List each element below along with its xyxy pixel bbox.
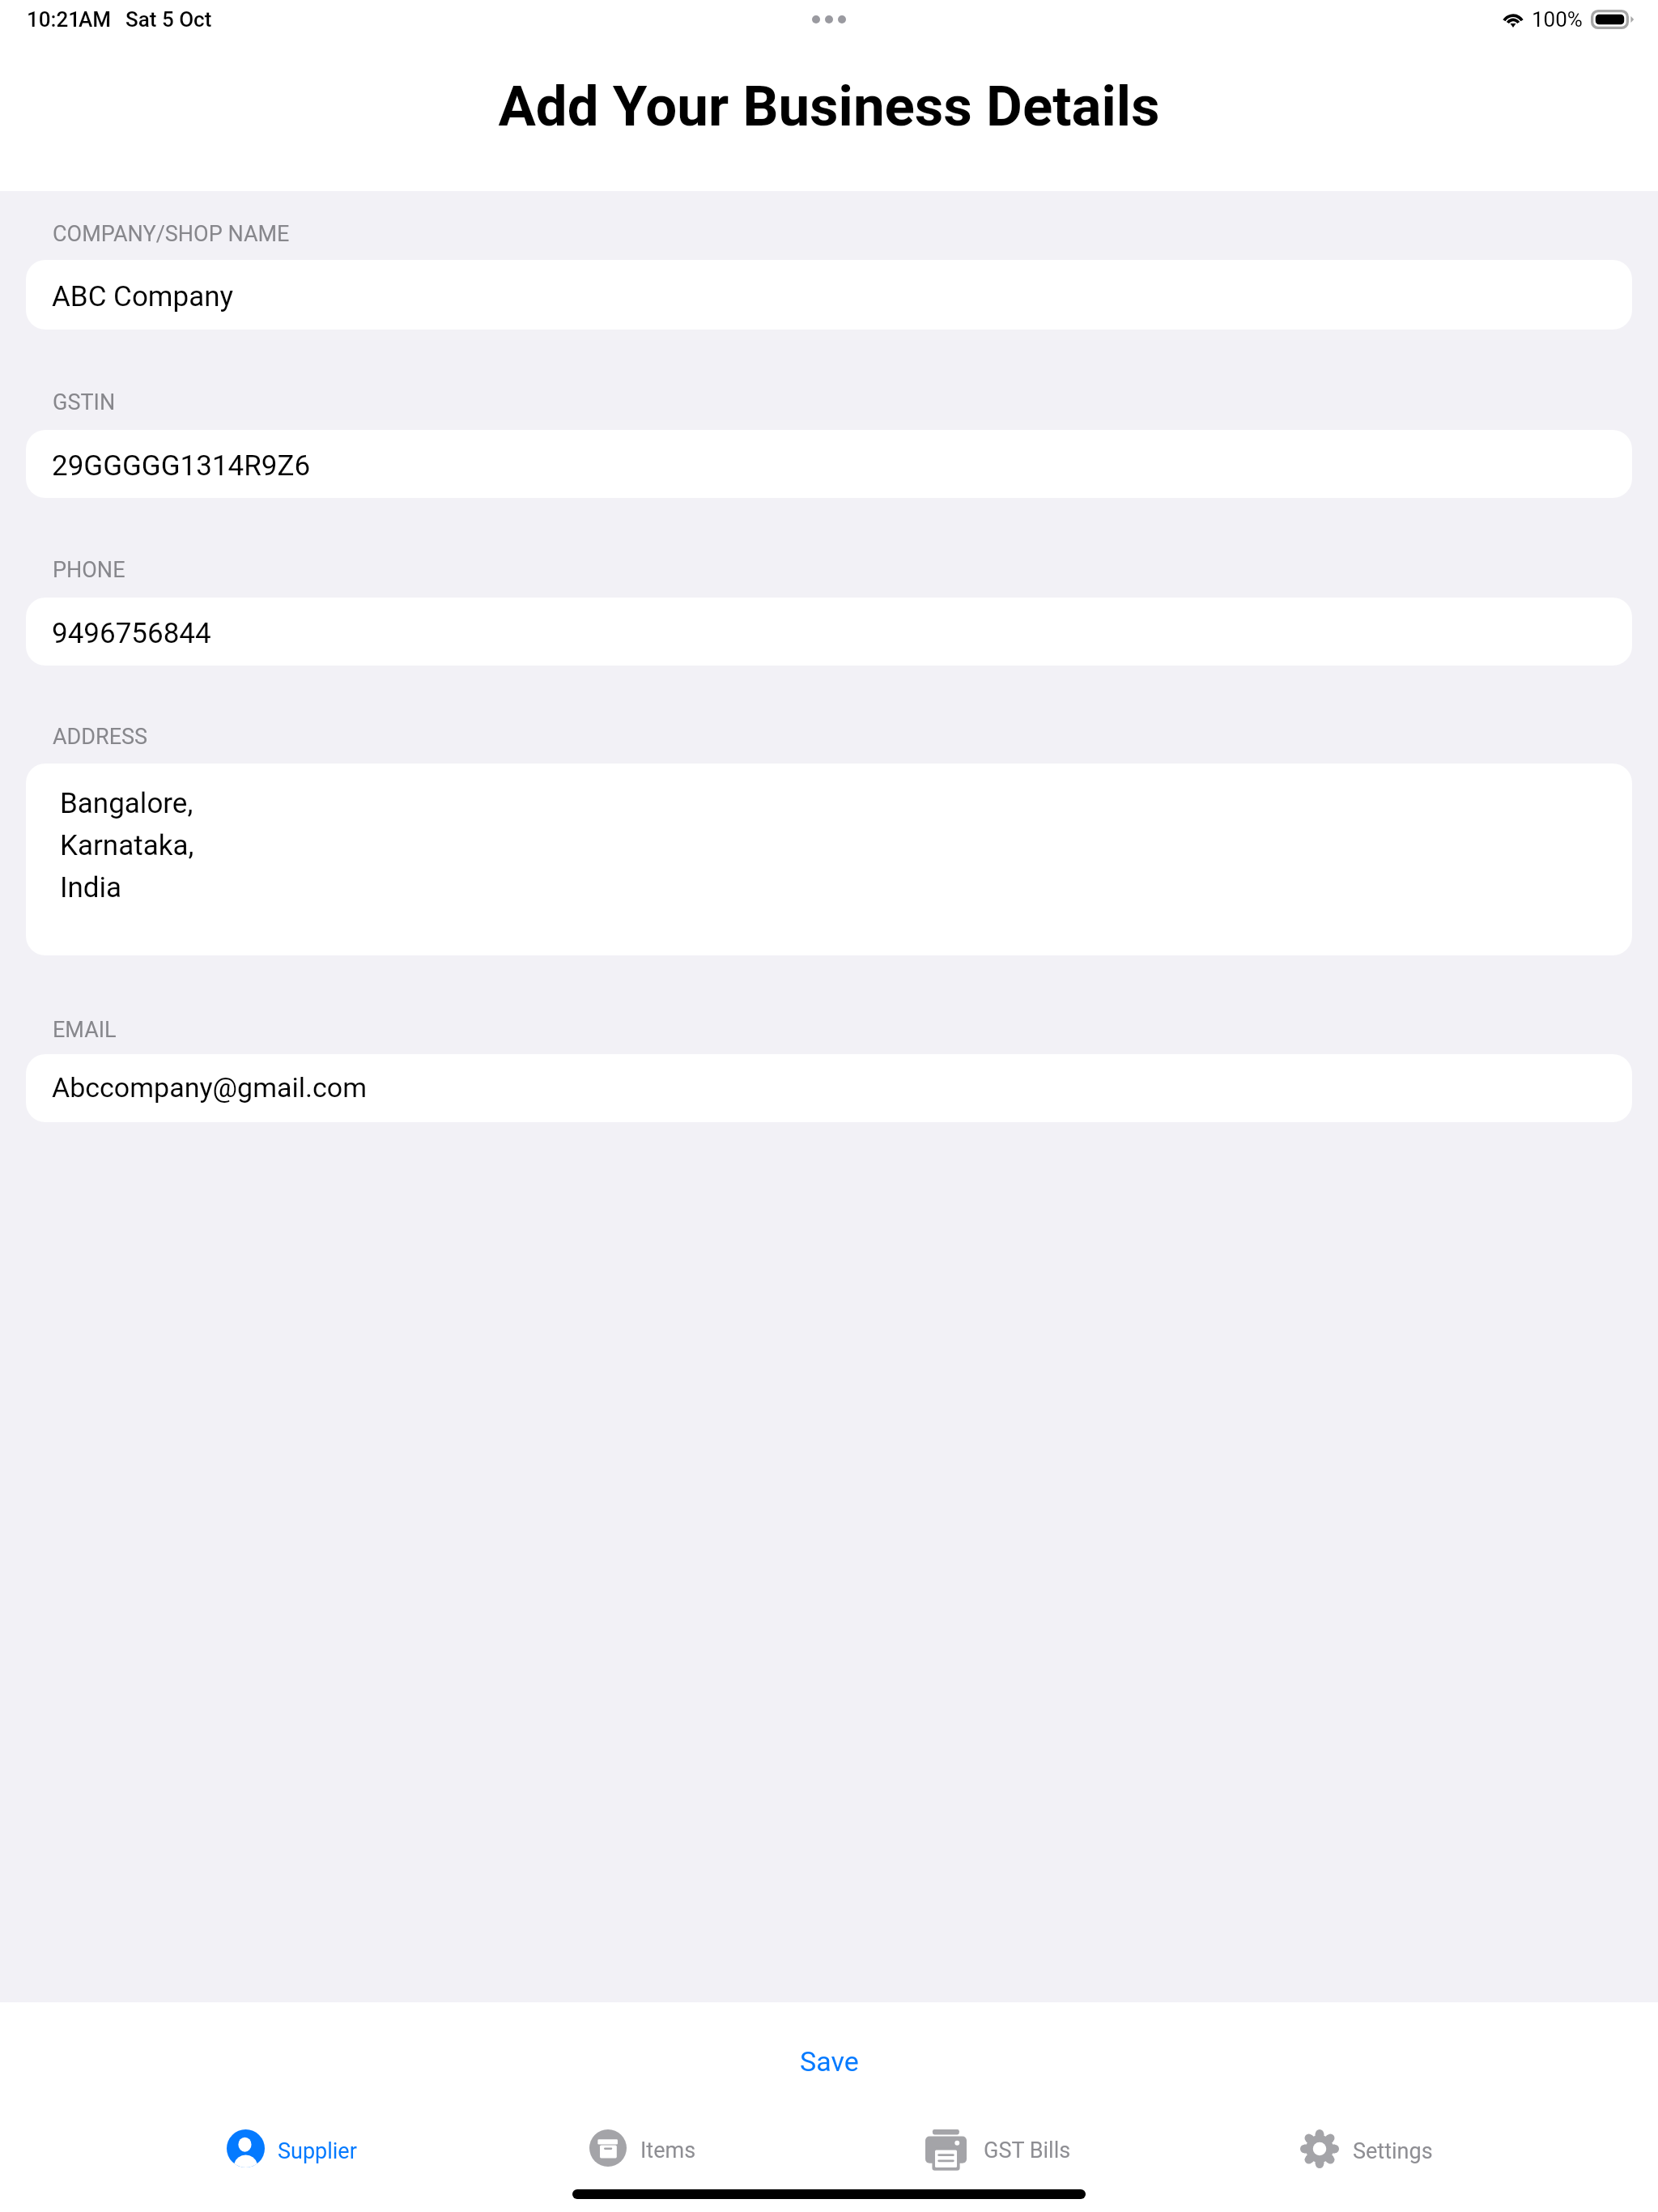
staticText: GSTIN	[53, 389, 116, 415]
staticText: Add Your Business Details	[498, 74, 1160, 139]
staticText: AM	[79, 7, 112, 32]
staticText: Settings	[1353, 2138, 1433, 2164]
staticText: EMAIL	[53, 1017, 117, 1043]
button[interactable]: GST Bills	[909, 2108, 1087, 2192]
other: Settings	[1300, 2129, 1339, 2168]
staticText: PHONE	[53, 557, 125, 583]
button[interactable]: Save	[777, 2039, 882, 2084]
staticText: Sat 5 Oct	[125, 7, 212, 32]
staticText: Abccompany@gmail.com	[52, 1071, 367, 1104]
staticText: ABC Company	[52, 280, 234, 313]
other: Items	[589, 2129, 627, 2167]
other: Supplier	[227, 2129, 265, 2167]
staticText: 29GGGGG1314R9Z6	[52, 449, 311, 483]
staticText: 100%	[1532, 7, 1583, 32]
button[interactable]: Supplier	[210, 2108, 373, 2189]
staticText: Save	[800, 2045, 859, 2078]
staticText: COMPANY/SHOP NAME	[53, 221, 290, 247]
staticText: ADDRESS	[53, 724, 148, 750]
button[interactable]: ABC Company	[26, 260, 1632, 330]
staticText: Supplier	[278, 2138, 357, 2164]
button[interactable]: Bangalore, Karnataka, India	[26, 764, 1632, 955]
button[interactable]: Abccompany@gmail.com	[26, 1054, 1632, 1122]
other: GST Bills	[925, 2129, 967, 2171]
button[interactable]: 29GGGGG1314R9Z6	[26, 430, 1632, 498]
staticText: Items	[640, 2138, 696, 2163]
staticText: 10:21	[27, 7, 81, 32]
button[interactable]: Settings	[1284, 2108, 1449, 2189]
staticText: 9496756844	[52, 617, 211, 650]
staticText: Bangalore, Karnataka, India	[60, 787, 194, 904]
staticText: GST Bills	[984, 2138, 1071, 2163]
button[interactable]: Items	[573, 2108, 712, 2188]
button[interactable]: 9496756844	[26, 598, 1632, 666]
